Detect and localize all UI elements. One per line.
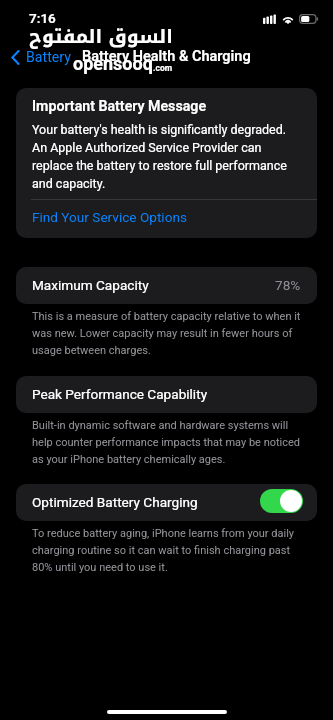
staticText: Built-in dynamic software and hardware s… [32,419,303,466]
staticText: 78% [275,277,301,293]
button[interactable]: Maximum Capacity [16,267,317,304]
button[interactable]: Optimized Battery Charging toggle, on [260,489,303,513]
staticText: Maximum Capacity [32,277,149,293]
button[interactable]: Find Your Service Options [16,200,317,238]
staticText: السوق المفتوح [29,19,173,55]
button[interactable]: Peak Performance Capability [16,376,317,413]
staticText: Battery [26,49,72,66]
staticText: This is a measure of battery capacity re… [32,310,303,357]
staticText: 7:16 [29,10,56,26]
staticText: Your battery's health is significantly d… [32,122,302,191]
button[interactable]: Battery [2,43,80,72]
staticText: Find Your Service Options [32,209,187,225]
staticText: Battery Health & Charging [82,48,251,65]
staticText: Optimized Battery Charging [32,494,198,510]
staticText: Important Battery Message [32,98,207,115]
staticText: Peak Performance Capability [32,386,208,402]
staticText: .com [153,63,173,73]
staticText: To reduce battery aging, iPhone learns f… [32,527,303,574]
staticText: opensooq [73,53,153,74]
